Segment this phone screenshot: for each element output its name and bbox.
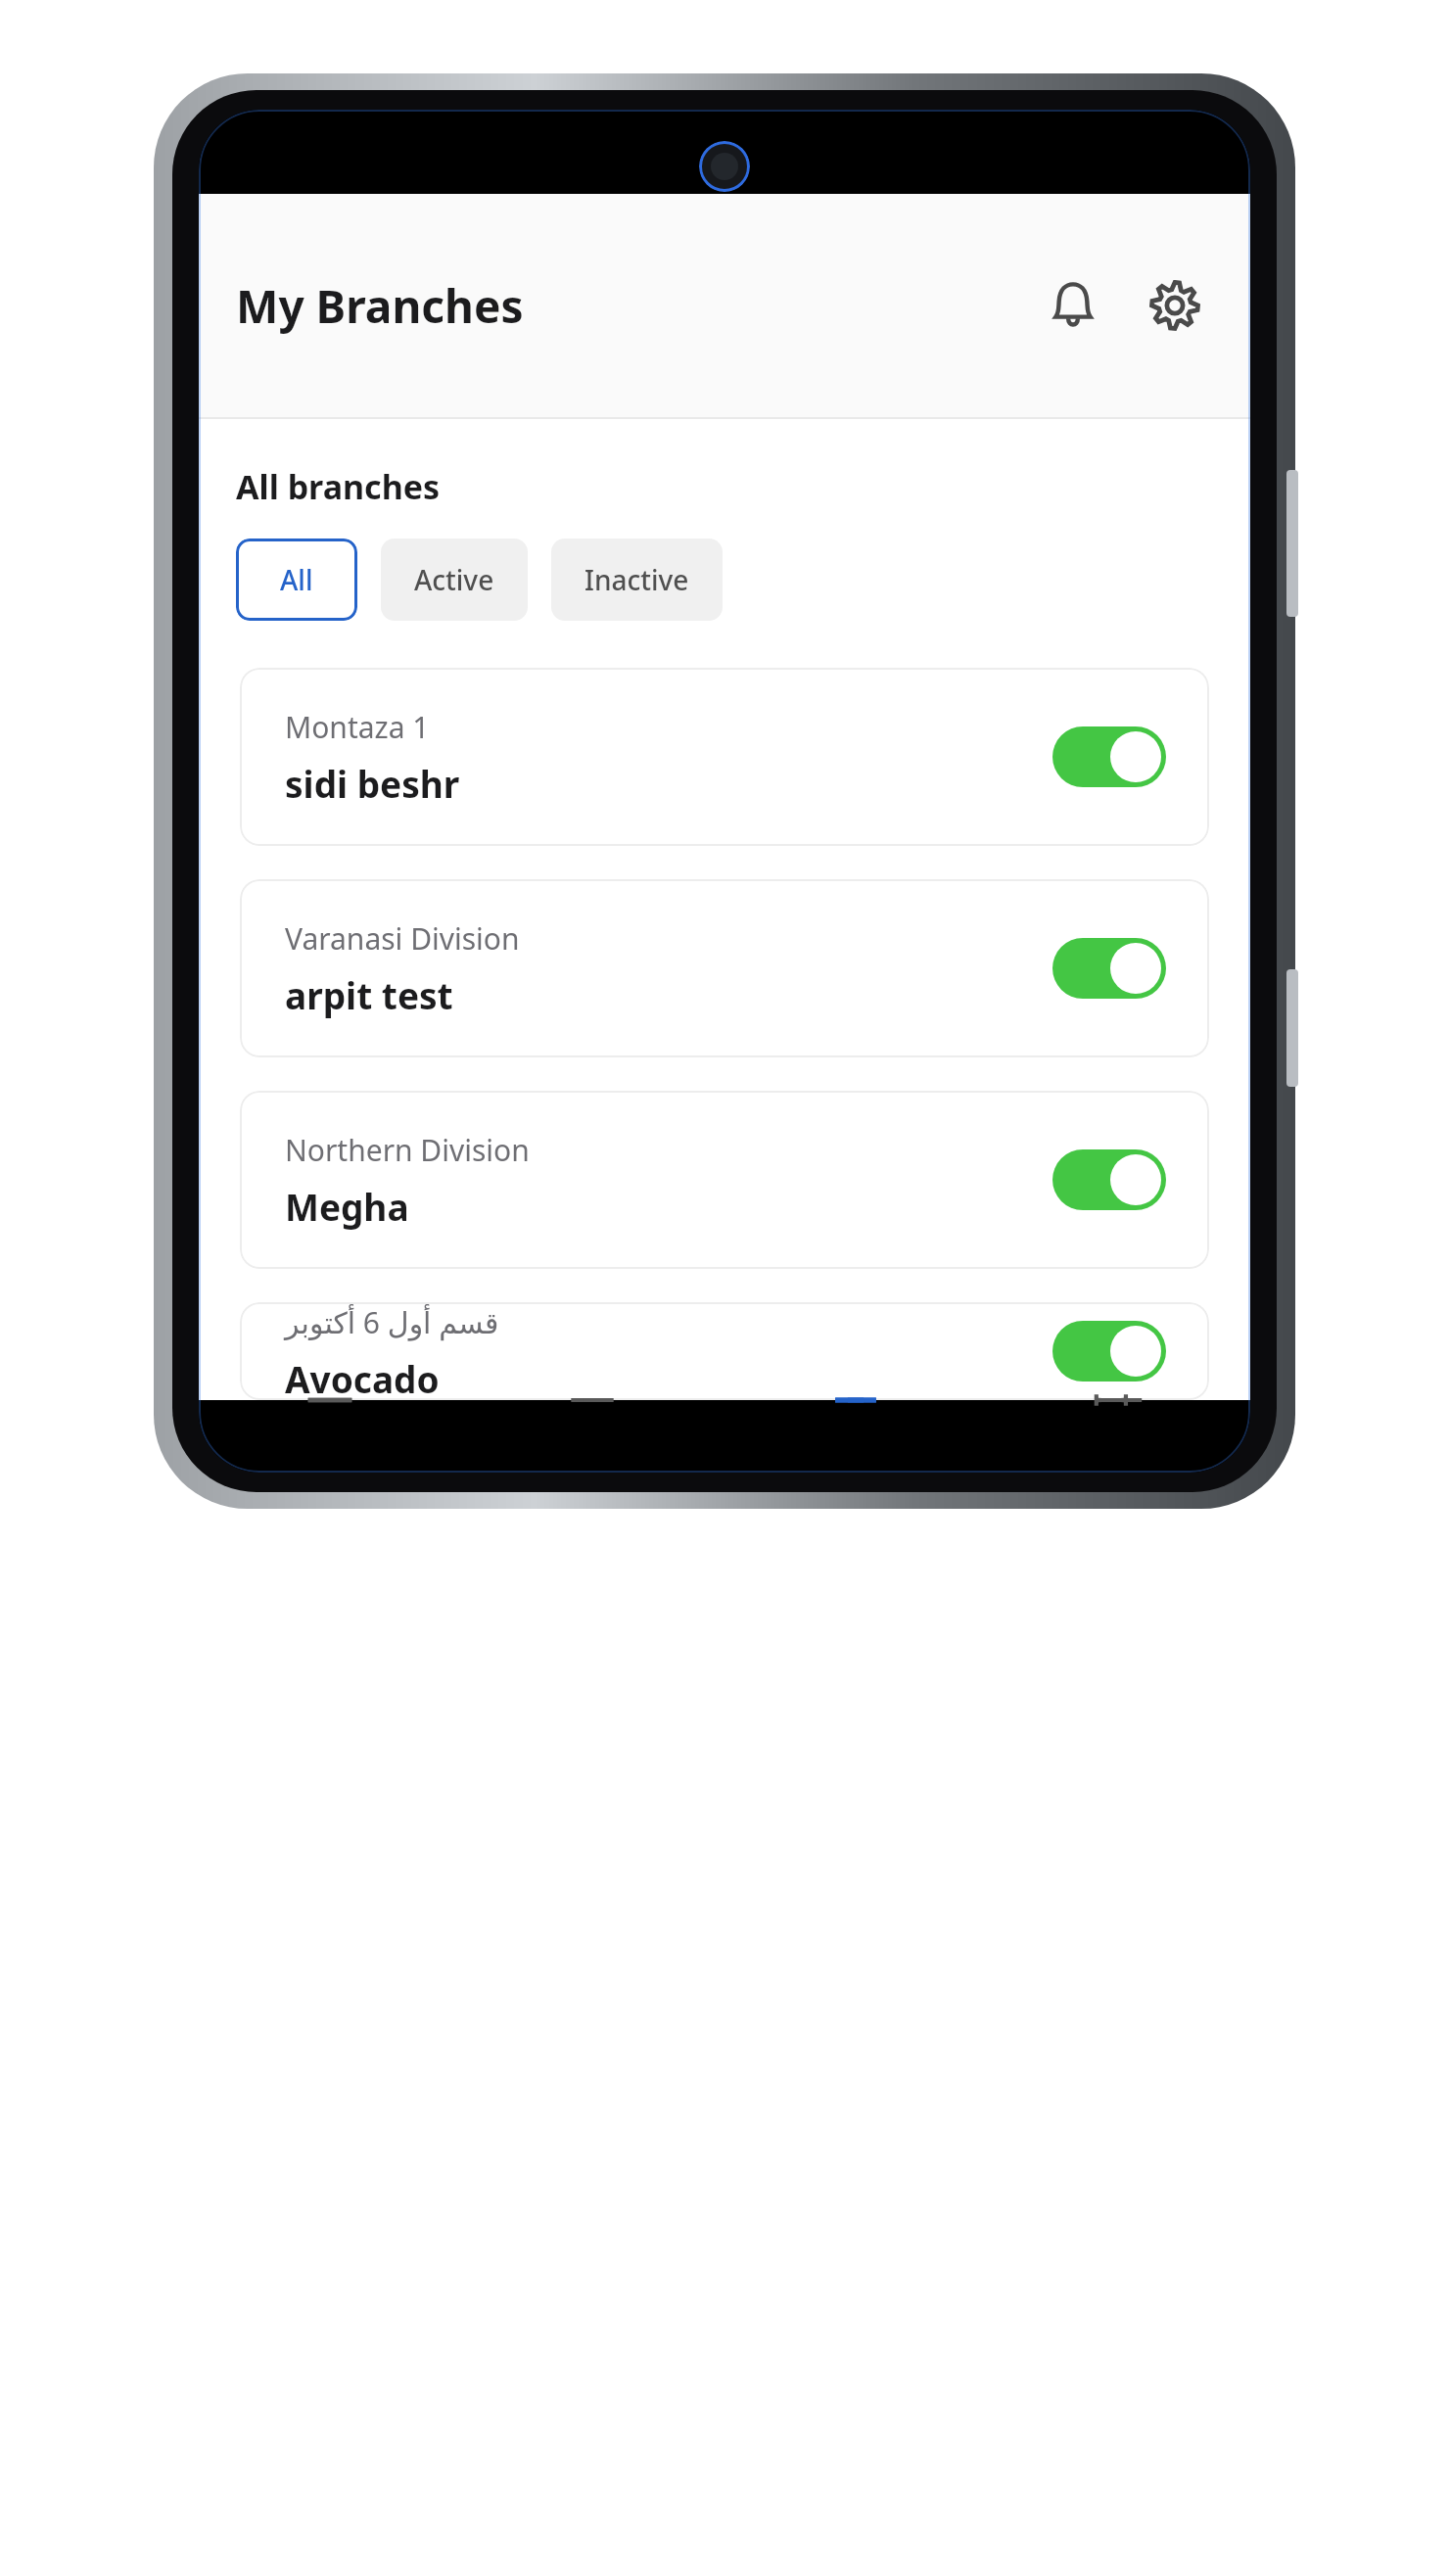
button[interactable]: Toggle branch active bbox=[1052, 938, 1166, 999]
button[interactable]: Settings bbox=[1133, 263, 1217, 348]
staticText: Montaza 1 bbox=[285, 707, 430, 747]
button[interactable]: Varanasi Division bbox=[240, 879, 1209, 1057]
button[interactable]: Active bbox=[381, 539, 528, 621]
button[interactable]: قسم أول 6 أكتوبر bbox=[240, 1302, 1209, 1400]
staticText: قسم أول 6 أكتوبر bbox=[285, 1302, 499, 1342]
staticText: Active bbox=[414, 561, 494, 598]
button[interactable]: Notifications bbox=[1031, 263, 1115, 348]
button[interactable]: Inactive bbox=[551, 539, 723, 621]
button[interactable]: Toggle branch active bbox=[1052, 1149, 1166, 1210]
staticText: sidi beshr bbox=[285, 759, 460, 808]
staticText: All branches bbox=[236, 464, 441, 509]
staticText: Varanasi Division bbox=[285, 918, 520, 959]
staticText: Inactive bbox=[584, 561, 689, 598]
staticText: arpit test bbox=[285, 970, 453, 1019]
button[interactable]: Toggle branch active bbox=[1052, 1321, 1166, 1382]
staticText: Avocado bbox=[285, 1354, 440, 1400]
staticText: Northern Division bbox=[285, 1130, 530, 1170]
button[interactable]: Northern Division bbox=[240, 1091, 1209, 1269]
button[interactable]: All bbox=[236, 539, 357, 621]
staticText: All bbox=[280, 561, 313, 598]
button[interactable]: Montaza 1 bbox=[240, 668, 1209, 846]
staticText: Megha bbox=[285, 1182, 409, 1231]
button[interactable]: Toggle branch active bbox=[1052, 726, 1166, 787]
staticText: My Branches bbox=[236, 275, 524, 337]
